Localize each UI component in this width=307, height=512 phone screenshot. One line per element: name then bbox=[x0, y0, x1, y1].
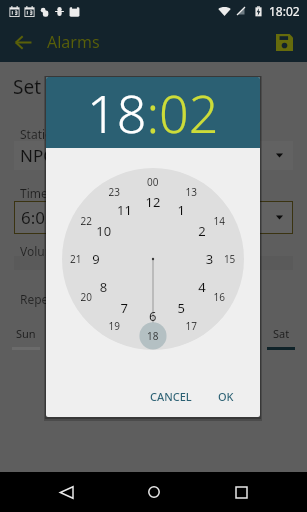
staticText: 6:02 bbox=[21, 206, 55, 229]
button[interactable]: OK bbox=[210, 381, 242, 412]
button[interactable]: Save bbox=[264, 22, 304, 62]
button[interactable]: Sun bbox=[12, 326, 40, 350]
staticText: 18:02 bbox=[269, 3, 300, 19]
button[interactable]: Thu bbox=[182, 326, 210, 350]
staticText: Volume bbox=[20, 243, 63, 259]
button[interactable]: Navigate up bbox=[0, 22, 46, 62]
staticText: NPO Radio 2 bbox=[20, 144, 121, 167]
button[interactable]: Wed bbox=[140, 326, 168, 350]
button[interactable]: Home bbox=[133, 472, 175, 512]
staticText: Time bbox=[20, 185, 48, 201]
staticText: OK bbox=[218, 389, 234, 404]
staticText: CANCEL bbox=[150, 389, 192, 404]
button[interactable]: Sat bbox=[267, 326, 295, 350]
staticText: Station bbox=[20, 126, 60, 142]
staticText: Set alarm bbox=[13, 74, 98, 100]
staticText: Alarms bbox=[47, 31, 100, 53]
staticText: Repeat bbox=[20, 291, 60, 307]
button[interactable]: Tue bbox=[97, 326, 125, 350]
staticText: Tue bbox=[102, 326, 121, 341]
staticText: Thu bbox=[186, 326, 206, 341]
staticText: Sat bbox=[273, 326, 290, 341]
staticText: Wed bbox=[143, 326, 166, 341]
staticText: Sun bbox=[16, 326, 36, 341]
button[interactable]: Back bbox=[45, 472, 87, 512]
button[interactable]: CANCEL bbox=[142, 381, 200, 412]
staticText: 18:02 bbox=[87, 77, 219, 148]
button[interactable]: Recent apps bbox=[220, 472, 262, 512]
